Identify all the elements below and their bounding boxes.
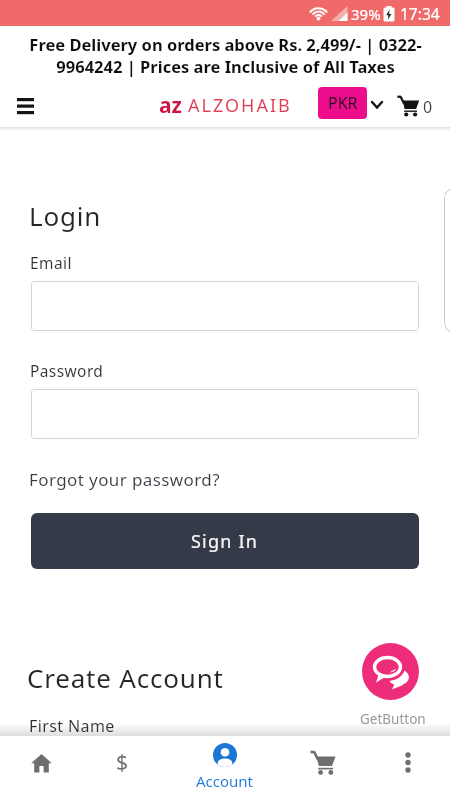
button[interactable]: Sign In [31, 513, 419, 569]
staticText: az [159, 91, 182, 120]
staticText: 17:34 [400, 3, 440, 24]
button[interactable]: Forgot your password? [29, 468, 220, 491]
staticText: Create Account [27, 660, 224, 695]
button[interactable]: 0 [393, 92, 438, 120]
button[interactable] [385, 741, 431, 783]
button[interactable] [9, 90, 42, 121]
button[interactable]: PKR [318, 87, 367, 119]
staticText: Account [196, 771, 254, 791]
button[interactable] [31, 281, 419, 331]
button[interactable] [362, 643, 419, 700]
button[interactable]: $ [100, 741, 145, 783]
staticText: ALZOHAIB [188, 93, 292, 118]
button[interactable] [300, 741, 346, 783]
staticText: Password [30, 360, 104, 381]
staticText: GetButton [360, 710, 426, 728]
staticText: PKR [328, 92, 358, 114]
staticText: Sign In [191, 529, 259, 554]
button[interactable]: Account [185, 743, 265, 797]
staticText: First Name [29, 715, 115, 737]
staticText: Email [30, 252, 72, 273]
button[interactable] [18, 741, 64, 783]
staticText: 39% [351, 4, 381, 24]
button[interactable]: az [159, 84, 292, 127]
staticText: $ [116, 748, 129, 777]
staticText: Login [29, 198, 102, 233]
staticText: 0 [423, 96, 433, 118]
button[interactable] [31, 389, 419, 439]
staticText: Free Delivery on orders above Rs. 2,499/… [29, 33, 422, 77]
